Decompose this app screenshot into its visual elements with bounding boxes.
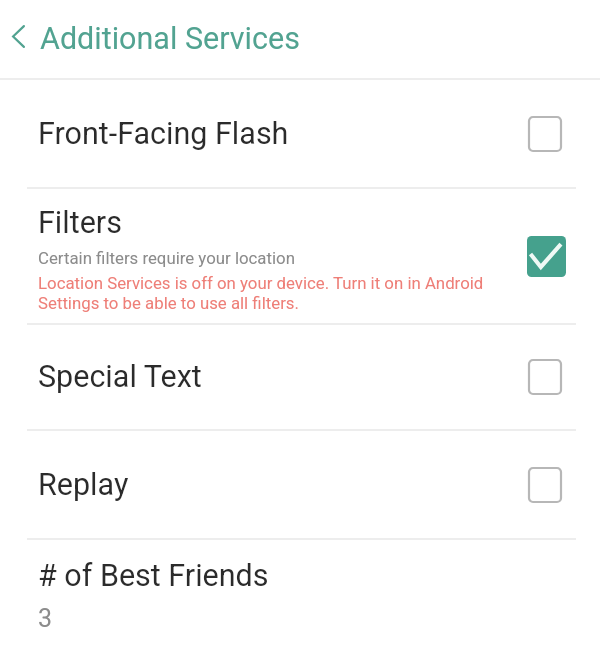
button[interactable]: Front-Facing Flash xyxy=(0,80,600,187)
staticText: Location Services is off on your device.… xyxy=(38,273,484,293)
staticText: Front-Facing Flash xyxy=(38,116,289,152)
button[interactable]: Toggle off xyxy=(523,463,567,507)
button[interactable]: Toggle off xyxy=(523,112,567,156)
button[interactable]: Replay xyxy=(0,431,600,538)
staticText: Certain filters require your location xyxy=(38,248,295,268)
button[interactable]: Filters xyxy=(0,189,600,323)
staticText: Settings to be able to use all filters. xyxy=(38,293,299,313)
button[interactable]: Special Text xyxy=(0,325,600,429)
staticText: Special Text xyxy=(38,359,202,395)
staticText: Replay xyxy=(38,467,129,503)
staticText: Filters xyxy=(38,205,122,241)
staticText: # of Best Friends xyxy=(38,558,269,594)
button[interactable]: Back xyxy=(0,0,600,78)
staticText: Additional Services xyxy=(40,21,300,57)
button[interactable]: Toggle off xyxy=(523,355,567,399)
staticText: 3 xyxy=(38,604,53,633)
other: Back xyxy=(3,13,33,59)
button[interactable]: Toggle on xyxy=(522,232,570,280)
button[interactable]: # of Best Friends xyxy=(0,540,600,633)
